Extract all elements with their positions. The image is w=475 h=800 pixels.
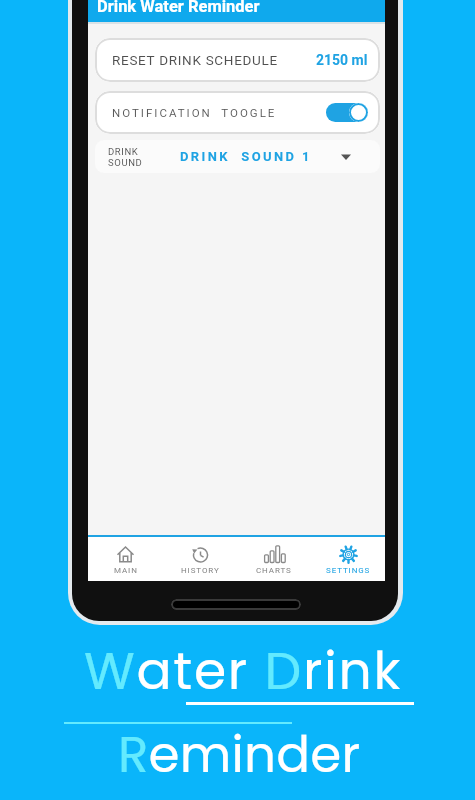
staticText: HISTORY <box>181 566 220 575</box>
staticText: CHARTS <box>256 566 292 575</box>
staticText: MAIN <box>114 566 138 575</box>
button[interactable]: DRINK SOUND <box>95 140 380 173</box>
button[interactable]: HISTORY <box>163 537 237 581</box>
button[interactable]: NOTIFICATION TOOGLE <box>95 91 380 134</box>
staticText: Reminder <box>118 720 361 790</box>
staticText: Drink Water Reminder <box>97 0 260 16</box>
staticText: DRINK SOUND 1 <box>180 149 312 164</box>
staticText: SETTINGS <box>326 566 371 575</box>
staticText: Water Drink <box>84 634 403 707</box>
button[interactable]: CHARTS <box>237 537 311 581</box>
staticText: RESET DRINK SCHEDULE <box>112 52 278 68</box>
button[interactable]: SETTINGS <box>311 537 385 581</box>
staticText: 2150 ml <box>316 52 368 68</box>
button[interactable]: Drink Water Reminder <box>88 0 385 22</box>
staticText: NOTIFICATION TOOGLE <box>112 106 277 119</box>
button[interactable] <box>326 103 368 122</box>
button[interactable]: RESET DRINK SCHEDULE <box>95 38 380 82</box>
staticText: DRINK SOUND <box>108 146 143 168</box>
button[interactable]: MAIN <box>88 537 163 581</box>
